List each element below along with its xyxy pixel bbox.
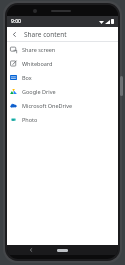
- staticText: Box: [22, 74, 32, 81]
- button[interactable]: Box: [7, 70, 118, 84]
- button[interactable]: Whiteboard: [7, 56, 118, 70]
- staticText: Google Drive: [22, 88, 56, 95]
- button[interactable]: Google Drive: [7, 84, 118, 98]
- button[interactable]: Photo: [7, 112, 118, 126]
- staticText: Whiteboard: [22, 60, 53, 67]
- staticText: Share screen: [22, 46, 56, 53]
- button[interactable]: Back: [27, 246, 35, 254]
- staticText: 9:00: [11, 18, 21, 25]
- button[interactable]: Back: [9, 29, 20, 40]
- staticText: Photo: [22, 116, 38, 123]
- staticText: Share content: [24, 30, 67, 39]
- button[interactable]: Microsoft OneDrive: [7, 98, 118, 112]
- button[interactable]: Home: [56, 247, 69, 253]
- staticText: Microsoft OneDrive: [22, 102, 73, 109]
- button[interactable]: Share screen: [7, 42, 118, 56]
